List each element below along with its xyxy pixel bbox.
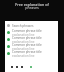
button[interactable]: Common phrase title (5, 43, 58, 50)
staticText: Free explanation of (0, 2, 64, 7)
staticText: Common phrase title (12, 29, 42, 33)
staticText: Search phrases (12, 24, 34, 28)
staticText: explanation line (12, 33, 35, 36)
staticText: phrases (0, 5, 64, 10)
staticText: Common phrase title (12, 43, 42, 47)
staticText: explanation line (12, 54, 35, 57)
button[interactable]: Common phrase title (5, 36, 58, 43)
button[interactable]: Common phrase title (5, 50, 58, 57)
button[interactable]: Search phrases (5, 22, 58, 29)
staticText: explanation line (12, 40, 35, 43)
staticText: Common phrase title (12, 36, 42, 40)
staticText: explanation line (12, 47, 35, 50)
staticText: Common phrase title (12, 50, 42, 54)
button[interactable]: Common phrase title (5, 29, 58, 36)
